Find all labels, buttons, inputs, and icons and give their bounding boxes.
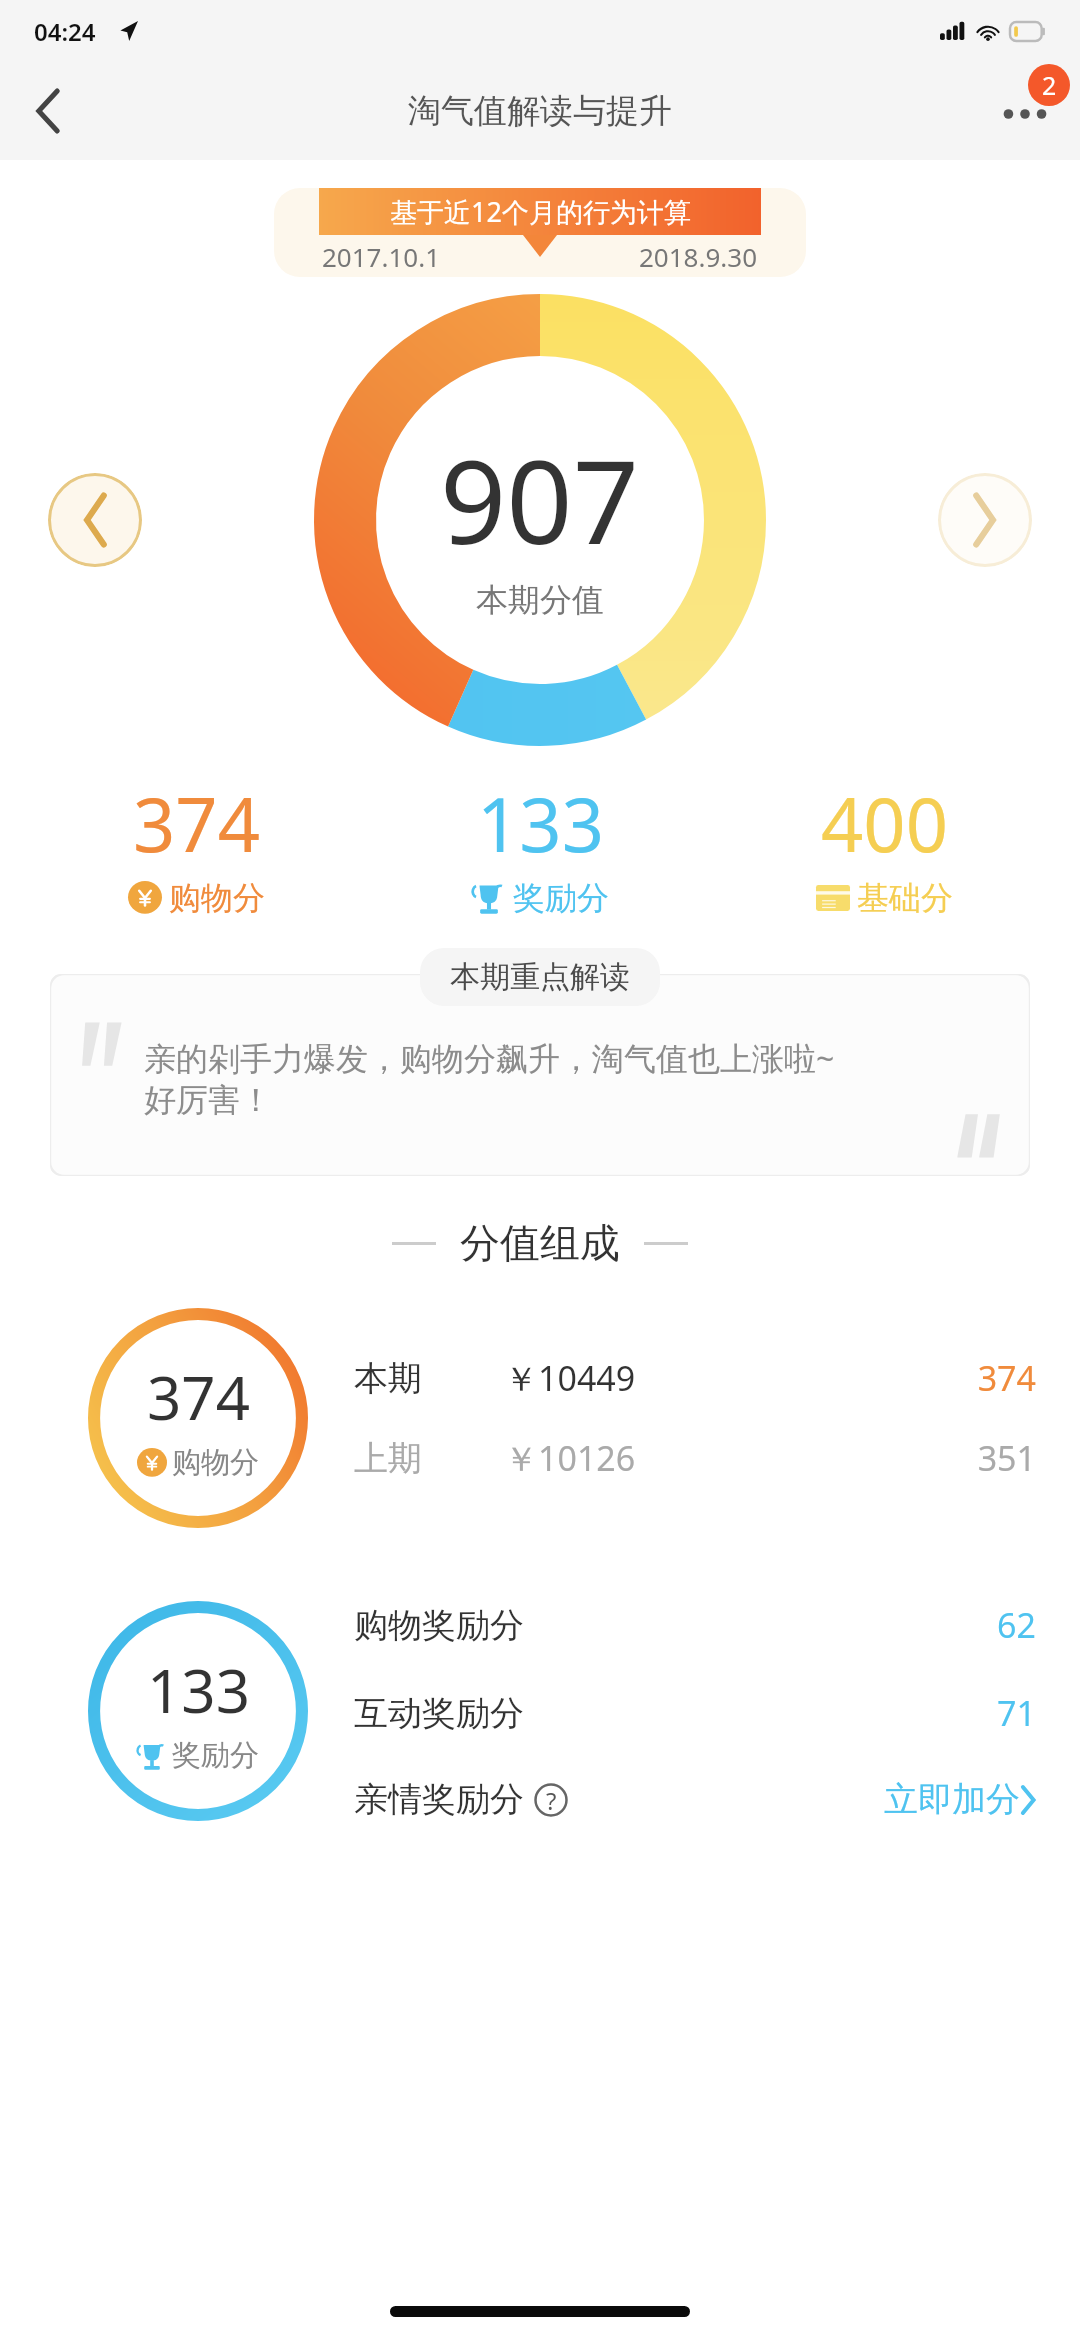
staticText: 351 bbox=[940, 1435, 1036, 1481]
button[interactable]: 374 bbox=[0, 1282, 1080, 1554]
staticText: 04:24 bbox=[34, 15, 96, 48]
staticText: 互动奖励分 bbox=[354, 1692, 997, 1735]
staticText: 400 bbox=[821, 773, 948, 874]
staticText: 2 bbox=[1042, 68, 1057, 102]
button[interactable]: More options, 2 notifications bbox=[970, 62, 1080, 160]
staticText: ￥10449 bbox=[504, 1355, 940, 1401]
staticText: 本期重点解读 bbox=[450, 958, 630, 996]
button[interactable]: Previous period bbox=[48, 473, 142, 567]
staticText: 好厉害！ bbox=[144, 1080, 272, 1120]
button[interactable]: 133 bbox=[0, 1566, 1080, 1856]
staticText: ? bbox=[546, 1784, 557, 1817]
staticText: 2017.10.1 bbox=[322, 239, 441, 274]
staticText: 亲情奖励分 bbox=[354, 1778, 524, 1821]
button[interactable]: Back bbox=[0, 62, 96, 160]
staticText: 374 bbox=[147, 1356, 250, 1438]
staticText: 奖励分 bbox=[513, 878, 609, 918]
staticText: 本期分值 bbox=[476, 580, 604, 620]
staticText: 133 bbox=[477, 773, 604, 874]
staticText: 907 bbox=[440, 420, 640, 578]
staticText: ￥10126 bbox=[504, 1435, 940, 1481]
staticText: 分值组成 bbox=[460, 1218, 620, 1268]
button[interactable]: 133 bbox=[368, 773, 712, 918]
staticText: 62 bbox=[997, 1602, 1036, 1648]
button[interactable]: 400 bbox=[712, 773, 1056, 918]
staticText: 奖励分 bbox=[172, 1737, 259, 1774]
staticText: 133 bbox=[147, 1649, 250, 1731]
staticText: 立即加分 bbox=[884, 1778, 1020, 1821]
staticText: 基于近12个月的行为计算 bbox=[390, 193, 691, 230]
staticText: 本期 bbox=[354, 1357, 504, 1400]
staticText: 购物奖励分 bbox=[354, 1604, 997, 1647]
button[interactable]: 立即加分 bbox=[884, 1778, 1036, 1821]
staticText: 购物分 bbox=[169, 878, 265, 918]
button[interactable]: Help about family reward points bbox=[534, 1783, 568, 1817]
staticText: 上期 bbox=[354, 1437, 504, 1480]
staticText: 2018.9.30 bbox=[639, 239, 758, 274]
button[interactable]: 374 bbox=[24, 773, 368, 918]
staticText: 亲的剁手力爆发，购物分飙升，淘气值也上涨啦~ bbox=[144, 1036, 835, 1080]
staticText: 基础分 bbox=[857, 878, 953, 918]
staticText: 374 bbox=[133, 773, 260, 874]
staticText: 71 bbox=[997, 1690, 1036, 1736]
staticText: 淘气值解读与提升 bbox=[408, 90, 672, 132]
staticText: 374 bbox=[940, 1355, 1036, 1401]
button[interactable]: Next period bbox=[938, 473, 1032, 567]
staticText: 购物分 bbox=[172, 1444, 259, 1481]
